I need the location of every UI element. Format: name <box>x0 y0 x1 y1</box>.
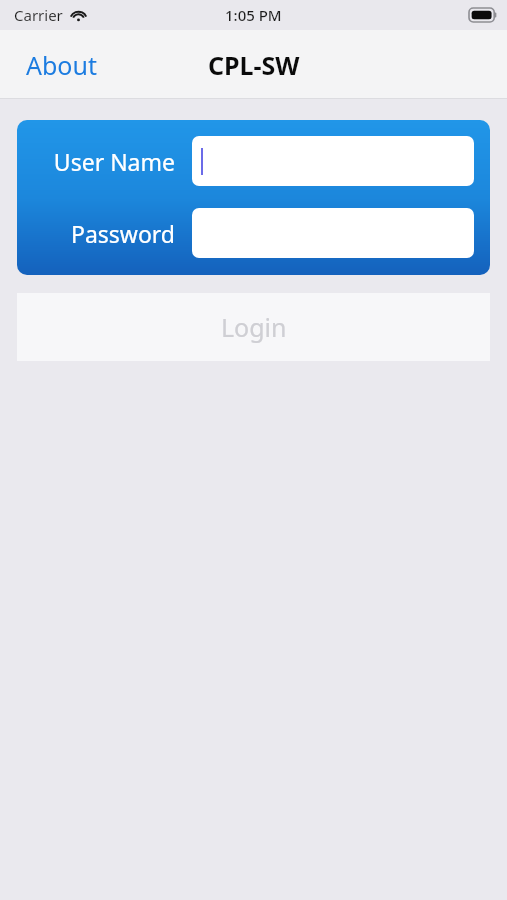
staticText: 1:05 PM <box>225 5 282 25</box>
button[interactable]: Password <box>192 208 474 258</box>
button[interactable]: User Name <box>192 136 474 186</box>
button[interactable]: About <box>16 42 107 88</box>
staticText: Password <box>70 218 175 249</box>
staticText: CPL-SW <box>208 48 300 82</box>
button[interactable]: Login <box>17 293 490 361</box>
staticText: About <box>26 48 97 82</box>
staticText: User Name <box>53 146 175 177</box>
staticText: Login <box>221 310 287 344</box>
staticText: Carrier <box>14 5 63 25</box>
